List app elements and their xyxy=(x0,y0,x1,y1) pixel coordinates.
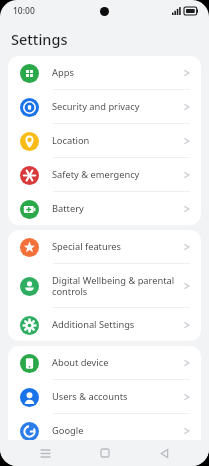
button[interactable]: Safety & emergency xyxy=(8,158,201,191)
staticText: Special features xyxy=(52,240,122,253)
staticText: Location xyxy=(52,134,90,147)
staticText: Digital Wellbeing & parental controls xyxy=(52,274,175,298)
staticText: Apps xyxy=(52,66,74,79)
button[interactable]: Digital Wellbeing & parental controls xyxy=(8,264,201,307)
button[interactable]: Home xyxy=(90,440,120,466)
button[interactable]: Back xyxy=(149,440,179,466)
staticText: About device xyxy=(52,356,109,369)
button[interactable]: Security and privacy xyxy=(8,90,201,123)
button[interactable]: Battery xyxy=(8,192,201,225)
button[interactable]: Users & accounts xyxy=(8,380,201,413)
button[interactable]: About device xyxy=(8,346,201,379)
staticText: Security and privacy xyxy=(52,100,140,113)
button[interactable]: Google xyxy=(8,414,201,447)
button[interactable]: Additional Settings xyxy=(8,308,201,341)
staticText: Google xyxy=(52,424,84,437)
button[interactable] xyxy=(8,448,201,466)
staticText: Settings xyxy=(11,29,68,49)
staticText: Safety & emergency xyxy=(52,168,140,181)
staticText: 10:00 xyxy=(13,5,35,17)
staticText: Users & accounts xyxy=(52,390,128,403)
button[interactable]: Special features xyxy=(8,230,201,263)
button[interactable]: Location xyxy=(8,124,201,157)
button[interactable]: Recent apps xyxy=(30,440,60,466)
button[interactable]: Apps xyxy=(8,56,201,89)
staticText: Battery xyxy=(52,202,84,215)
staticText: Additional Settings xyxy=(52,318,135,331)
